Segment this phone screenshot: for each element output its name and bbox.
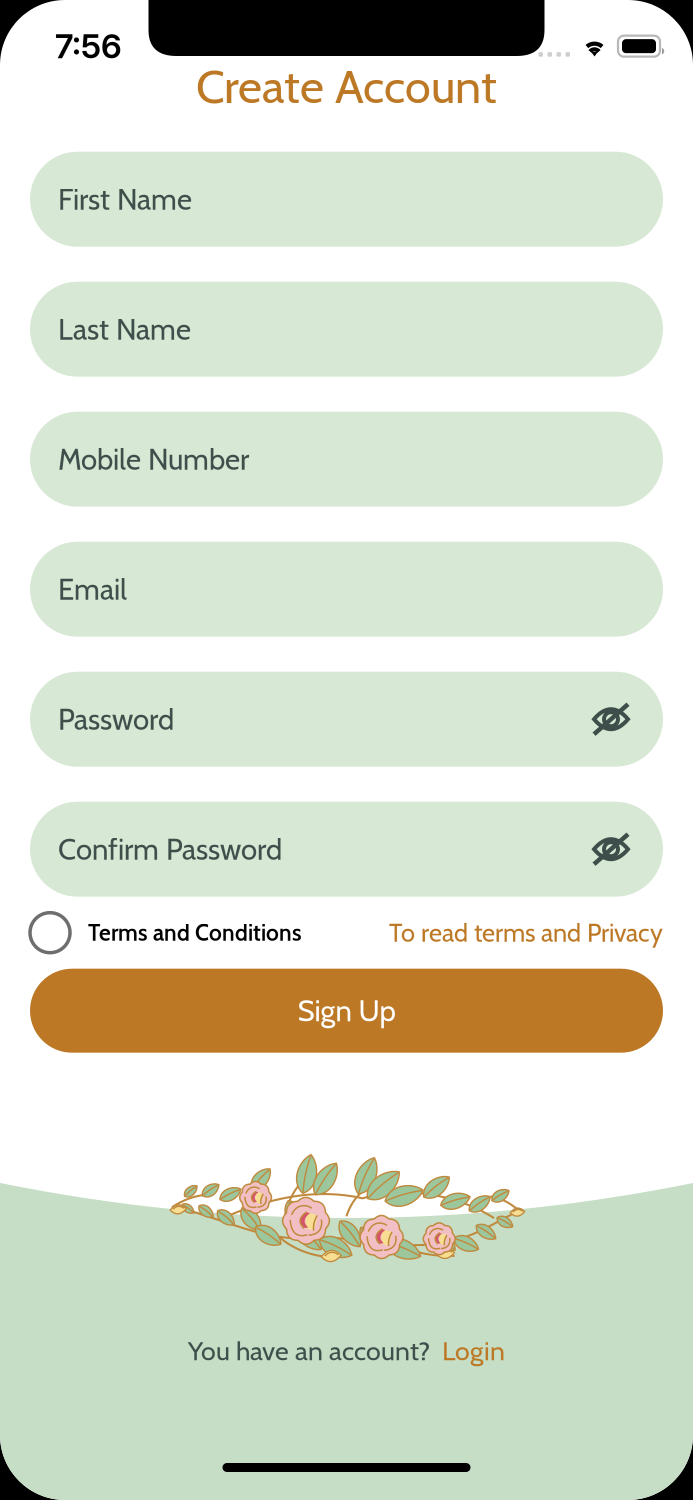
staticText: 7:56 [55,26,122,66]
button[interactable]: Last Name [30,282,663,377]
staticText: First Name [58,181,192,217]
button[interactable]: Email [30,542,663,637]
button[interactable]: Login [442,1335,505,1367]
button[interactable]: First Name [30,152,663,247]
staticText: Last Name [58,311,191,347]
staticText: Login [442,1335,505,1367]
staticText: Email [58,571,127,607]
button[interactable]: Accept terms and conditions [30,913,70,953]
staticText: You have an account? [188,1335,430,1367]
staticText: Mobile Number [58,441,249,477]
staticText: Confirm Password [58,831,282,867]
staticText: Password [58,701,174,737]
button[interactable]: Confirm Password [30,802,663,897]
button[interactable]: Sign Up [0,969,693,1053]
button[interactable]: Mobile Number [30,412,663,507]
staticText: Sign Up [297,993,395,1028]
staticText: To read terms and Privacy [389,917,663,948]
staticText: Create Account [196,58,497,115]
button[interactable]: Password [30,672,663,767]
staticText: Terms and Conditions [88,919,302,946]
button[interactable]: To read terms and Privacy [389,917,663,948]
